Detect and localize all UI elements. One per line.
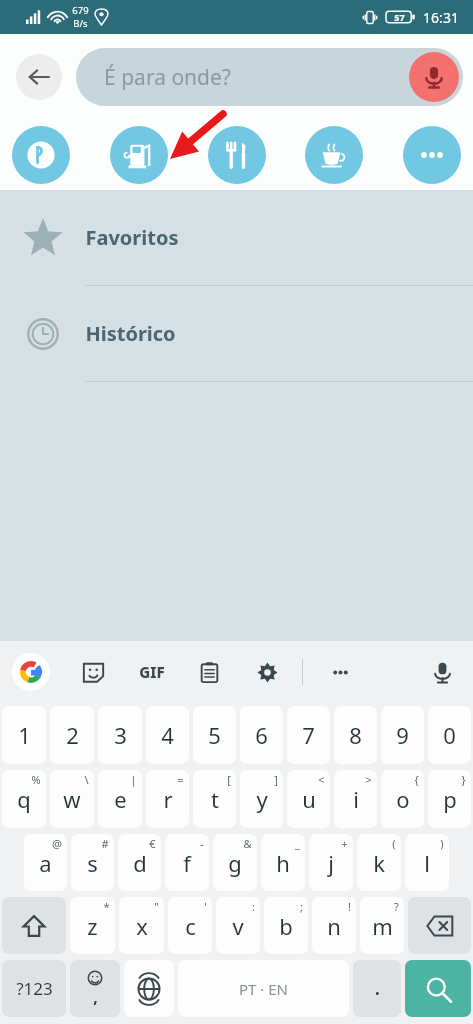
button[interactable]: a (24, 834, 67, 891)
button[interactable]: b (264, 897, 308, 954)
button[interactable]: Shift (2, 897, 66, 954)
button[interactable]: r (146, 770, 189, 828)
staticText: r (163, 784, 173, 814)
staticText: ] (274, 772, 278, 787)
button[interactable]: c (168, 897, 212, 954)
staticText: " (154, 899, 159, 914)
button[interactable]: More options (323, 655, 357, 689)
staticText: 3 (114, 720, 127, 750)
button[interactable]: GIF (134, 654, 170, 690)
button[interactable]: Voice search (409, 52, 459, 102)
staticText: * (103, 899, 110, 914)
button[interactable]: Favoritos (0, 190, 473, 286)
staticText: 679 (72, 4, 89, 17)
staticText: y (256, 784, 268, 814)
button[interactable]: É para onde? (76, 48, 463, 106)
staticText: : (252, 899, 255, 914)
button[interactable]: 6 (240, 706, 283, 764)
button[interactable]: i (334, 770, 377, 828)
button[interactable]: o (381, 770, 424, 828)
button[interactable]: Back (16, 54, 62, 100)
staticText: ' (204, 899, 207, 914)
button[interactable]: Voice input (425, 655, 459, 689)
button[interactable]: q (2, 770, 46, 828)
staticText: m (372, 911, 393, 941)
staticText: z (87, 911, 98, 941)
button[interactable]: Restaurants (208, 126, 266, 184)
button[interactable]: v (216, 897, 260, 954)
button[interactable]: 3 (98, 706, 142, 764)
button[interactable]: . (353, 960, 401, 1017)
staticText: [ (227, 772, 231, 787)
staticText: , (93, 986, 98, 1008)
button[interactable]: Google (12, 653, 50, 691)
button[interactable]: Search (405, 960, 471, 1017)
button[interactable]: Change language (124, 960, 174, 1017)
button[interactable]: g (213, 834, 257, 891)
staticText: g (228, 848, 242, 878)
button[interactable]: 4 (146, 706, 189, 764)
button[interactable]: y (240, 770, 283, 828)
button[interactable]: t (193, 770, 236, 828)
button[interactable]: h (261, 834, 305, 891)
button[interactable]: e (98, 770, 142, 828)
button[interactable]: z (70, 897, 115, 954)
button[interactable]: m (360, 897, 404, 954)
button[interactable]: Backspace (408, 897, 471, 954)
button[interactable]: More (403, 126, 461, 184)
button[interactable]: l (405, 834, 449, 891)
button[interactable]: 5 (193, 706, 236, 764)
staticText: q (17, 784, 31, 814)
button[interactable]: Settings (250, 655, 284, 689)
button[interactable]: k (357, 834, 401, 891)
staticText: 0 (443, 720, 456, 750)
button[interactable]: 8 (334, 706, 377, 764)
button[interactable]: w (50, 770, 94, 828)
button[interactable]: 2 (50, 706, 94, 764)
staticText: . (375, 977, 380, 1000)
staticText: l (424, 848, 430, 878)
staticText: 2 (66, 720, 79, 750)
button[interactable]: PT · EN (178, 960, 349, 1017)
button[interactable]: Emoji and comma (70, 960, 120, 1017)
button[interactable]: j (309, 834, 353, 891)
staticText: É para onde? (104, 63, 231, 92)
button[interactable]: 0 (428, 706, 471, 764)
button[interactable]: s (71, 834, 114, 891)
staticText: % (31, 772, 41, 787)
staticText: € (149, 836, 156, 851)
staticText: } (461, 772, 466, 787)
button[interactable]: 9 (381, 706, 424, 764)
staticText: | (130, 772, 137, 787)
staticText: f (183, 848, 191, 878)
staticText: b (279, 911, 293, 941)
button[interactable]: 7 (287, 706, 330, 764)
button[interactable]: Histórico (0, 286, 473, 382)
staticText: 8 (349, 720, 362, 750)
staticText: # (101, 836, 109, 851)
staticText: ) (440, 836, 444, 851)
button[interactable]: 1 (2, 706, 46, 764)
button[interactable]: Gas station (110, 126, 168, 184)
button[interactable]: p (428, 770, 471, 828)
staticText: < (318, 772, 325, 787)
staticText: w (63, 784, 81, 814)
staticText: u (302, 784, 316, 814)
staticText: ! (348, 899, 351, 914)
staticText: _ (295, 836, 300, 851)
staticText: = (177, 772, 184, 787)
staticText: o (396, 784, 410, 814)
button[interactable]: x (119, 897, 164, 954)
button[interactable]: d (118, 834, 161, 891)
button[interactable]: Parking (12, 126, 70, 184)
button[interactable]: Clipboard (192, 655, 226, 689)
button[interactable]: n (312, 897, 356, 954)
button[interactable]: Stickers (76, 655, 110, 689)
staticText: { (414, 772, 419, 787)
staticText: j (328, 848, 334, 878)
button[interactable]: Cafes (305, 126, 363, 184)
staticText: & (243, 836, 252, 851)
button[interactable]: f (165, 834, 209, 891)
button[interactable]: u (287, 770, 330, 828)
button[interactable]: ?123 (2, 960, 66, 1017)
